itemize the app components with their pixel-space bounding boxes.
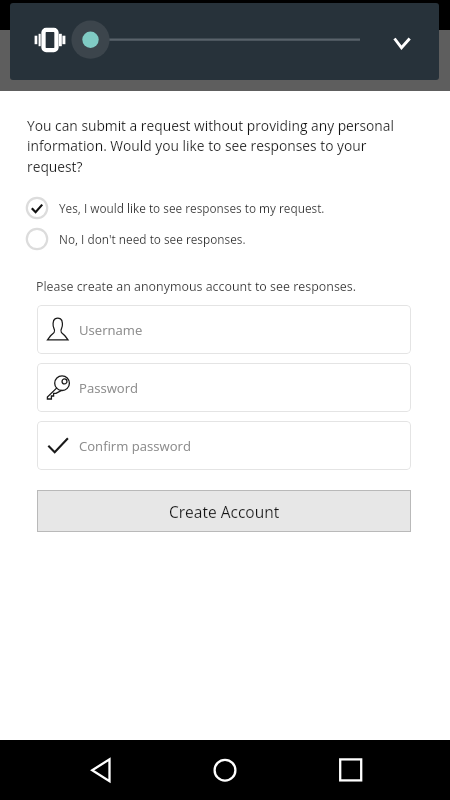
button[interactable]: Yes, I would like to see responses to my… <box>0 197 450 219</box>
staticText: Confirm password <box>79 437 191 455</box>
button[interactable]: No, I don't need to see responses. <box>0 228 450 250</box>
button[interactable]: Username <box>37 305 411 354</box>
staticText: You can submit a request without providi… <box>27 116 420 177</box>
staticText: Create Account <box>169 501 280 522</box>
staticText: Please create an anonymous account to se… <box>36 278 356 295</box>
button[interactable]: Vibrate mode <box>34 24 66 56</box>
staticText: No, I don't need to see responses. <box>59 231 246 247</box>
button[interactable]: Password <box>37 363 411 412</box>
staticText: Yes, I would like to see responses to my… <box>59 200 325 216</box>
button[interactable]: Confirm password <box>37 421 411 470</box>
button[interactable]: Recent apps <box>327 746 371 790</box>
button[interactable]: Back <box>78 746 122 790</box>
button[interactable]: Expand volume controls <box>387 26 415 54</box>
button[interactable]: Home <box>203 746 247 790</box>
staticText: Password <box>79 379 139 397</box>
staticText: Username <box>79 321 143 339</box>
button[interactable]: Create Account <box>37 490 411 532</box>
